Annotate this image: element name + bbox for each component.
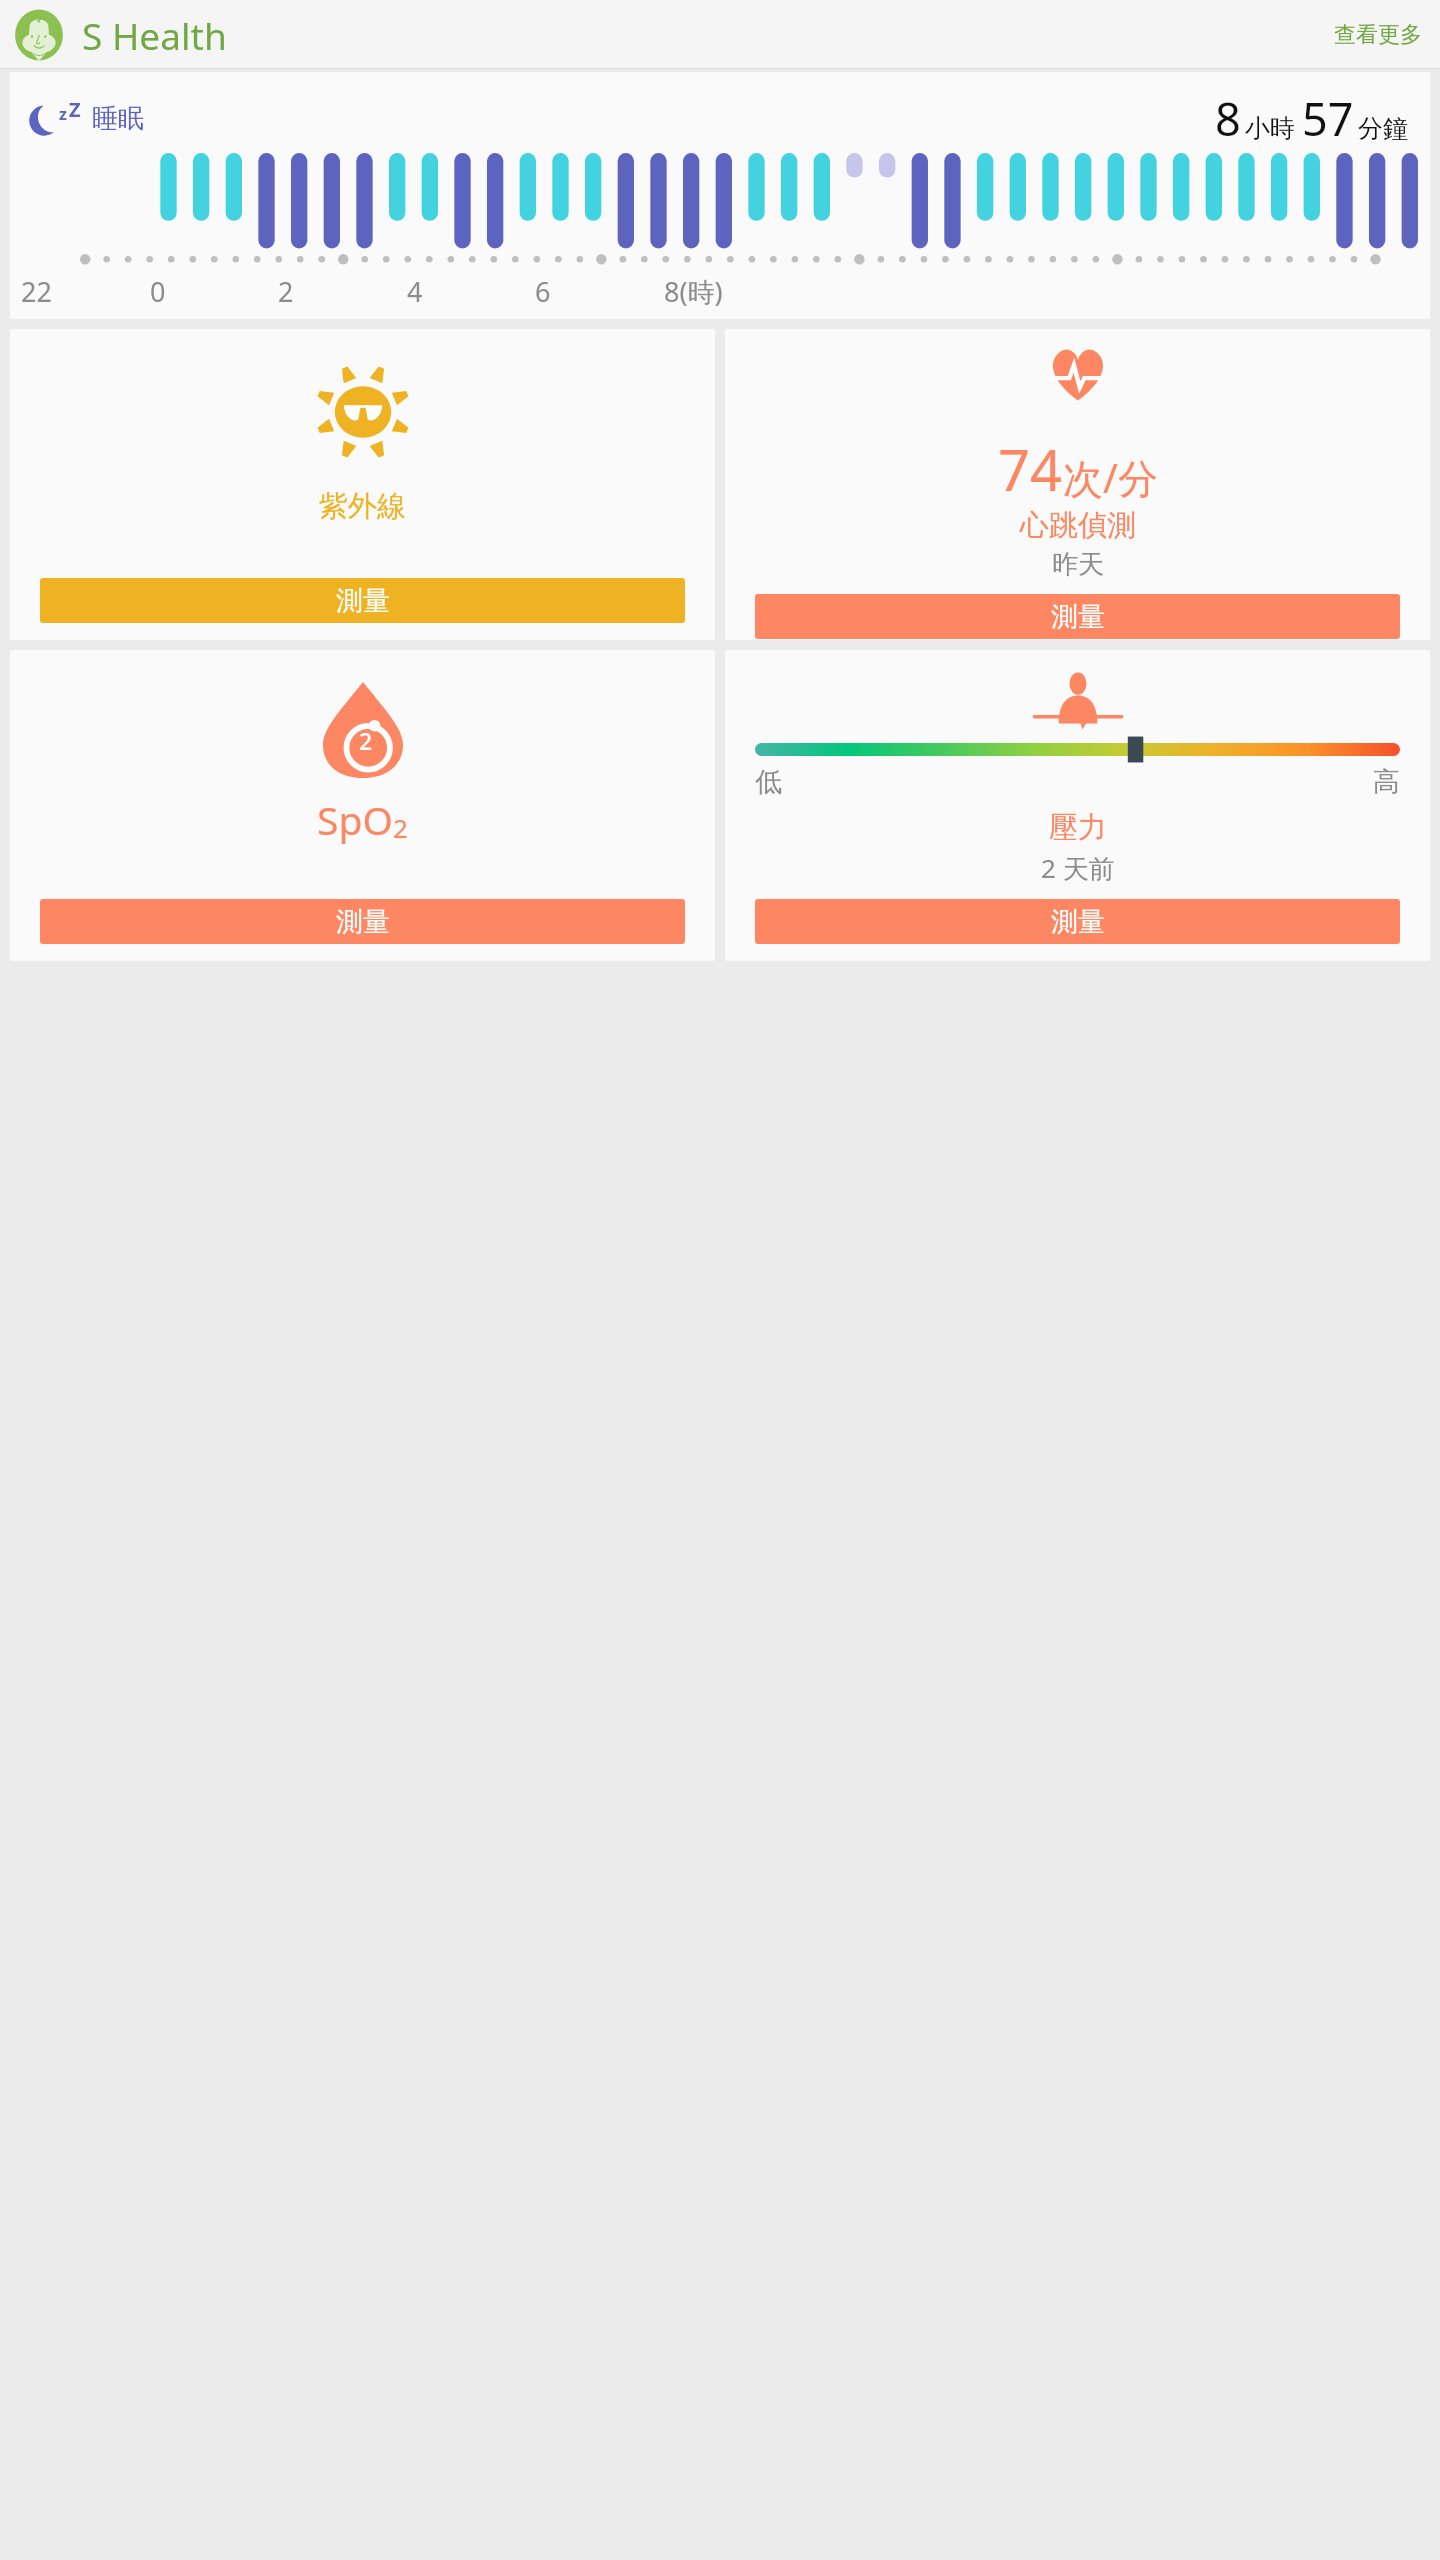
- staticText: 紫外線: [319, 488, 406, 525]
- button[interactable]: z: [10, 72, 1430, 319]
- staticText: 8: [1215, 88, 1241, 149]
- staticText: 2: [359, 725, 373, 756]
- button[interactable]: Profile: [13, 9, 65, 61]
- staticText: 測量: [336, 905, 390, 939]
- button[interactable]: 測量: [40, 578, 685, 623]
- staticText: 4: [407, 273, 423, 310]
- staticText: 昨天: [1052, 548, 1104, 581]
- staticText: SpO: [317, 793, 393, 846]
- staticText: S Health: [82, 10, 227, 60]
- staticText: 查看更多: [1334, 21, 1422, 49]
- staticText: 74: [998, 431, 1063, 507]
- staticText: 22: [21, 273, 52, 310]
- staticText: 8(時): [664, 273, 723, 310]
- staticText: 測量: [1051, 600, 1105, 634]
- staticText: 測量: [1051, 905, 1105, 939]
- staticText: 心跳偵測: [1020, 507, 1136, 544]
- staticText: 睡眠: [92, 102, 144, 135]
- staticText: 2 天前: [1041, 850, 1115, 886]
- staticText: 分鐘: [1358, 113, 1408, 144]
- staticText: 0: [150, 273, 166, 310]
- staticText: 57: [1302, 88, 1354, 149]
- staticText: 2: [278, 273, 294, 310]
- button[interactable]: 低: [725, 650, 1430, 961]
- button[interactable]: 測量: [755, 594, 1400, 639]
- button[interactable]: 測量: [755, 899, 1400, 944]
- staticText: z: [59, 103, 67, 125]
- button[interactable]: 測量: [40, 899, 685, 944]
- staticText: 2: [393, 810, 408, 845]
- staticText: Z: [69, 96, 81, 123]
- button[interactable]: 紫外線: [10, 329, 715, 640]
- staticText: 低: [755, 765, 782, 799]
- staticText: 6: [535, 273, 551, 310]
- staticText: 高: [1373, 765, 1400, 799]
- staticText: 壓力: [1049, 809, 1107, 846]
- button[interactable]: 74: [725, 329, 1430, 640]
- staticText: 測量: [336, 584, 390, 618]
- staticText: 小時: [1245, 113, 1295, 144]
- staticText: 次/分: [1063, 450, 1158, 505]
- button[interactable]: 2: [10, 650, 715, 961]
- button[interactable]: 查看更多: [1326, 11, 1430, 59]
